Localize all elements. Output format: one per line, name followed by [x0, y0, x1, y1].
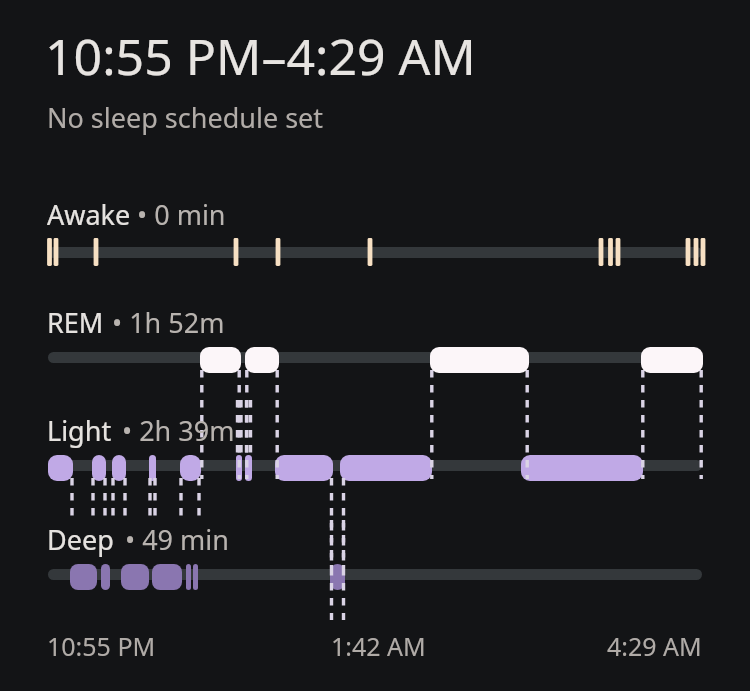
staticText: • 1h 52m [112, 304, 225, 341]
staticText: No sleep schedule set [47, 99, 324, 136]
staticText: REM [47, 304, 104, 341]
staticText: 10:55 PM–4:29 AM [45, 22, 476, 90]
staticText: • 2h 39m [122, 412, 235, 449]
staticText: Deep [47, 521, 114, 558]
staticText: 1:42 AM [331, 629, 426, 663]
button[interactable]: Sleep stage breakdown [0, 0, 750, 691]
staticText: • 0 min [137, 196, 226, 233]
staticText: Awake [47, 196, 131, 233]
staticText: 10:55 PM [47, 629, 156, 663]
staticText: • 49 min [125, 521, 229, 558]
staticText: 4:29 AM [607, 629, 702, 663]
staticText: Light [47, 412, 112, 449]
